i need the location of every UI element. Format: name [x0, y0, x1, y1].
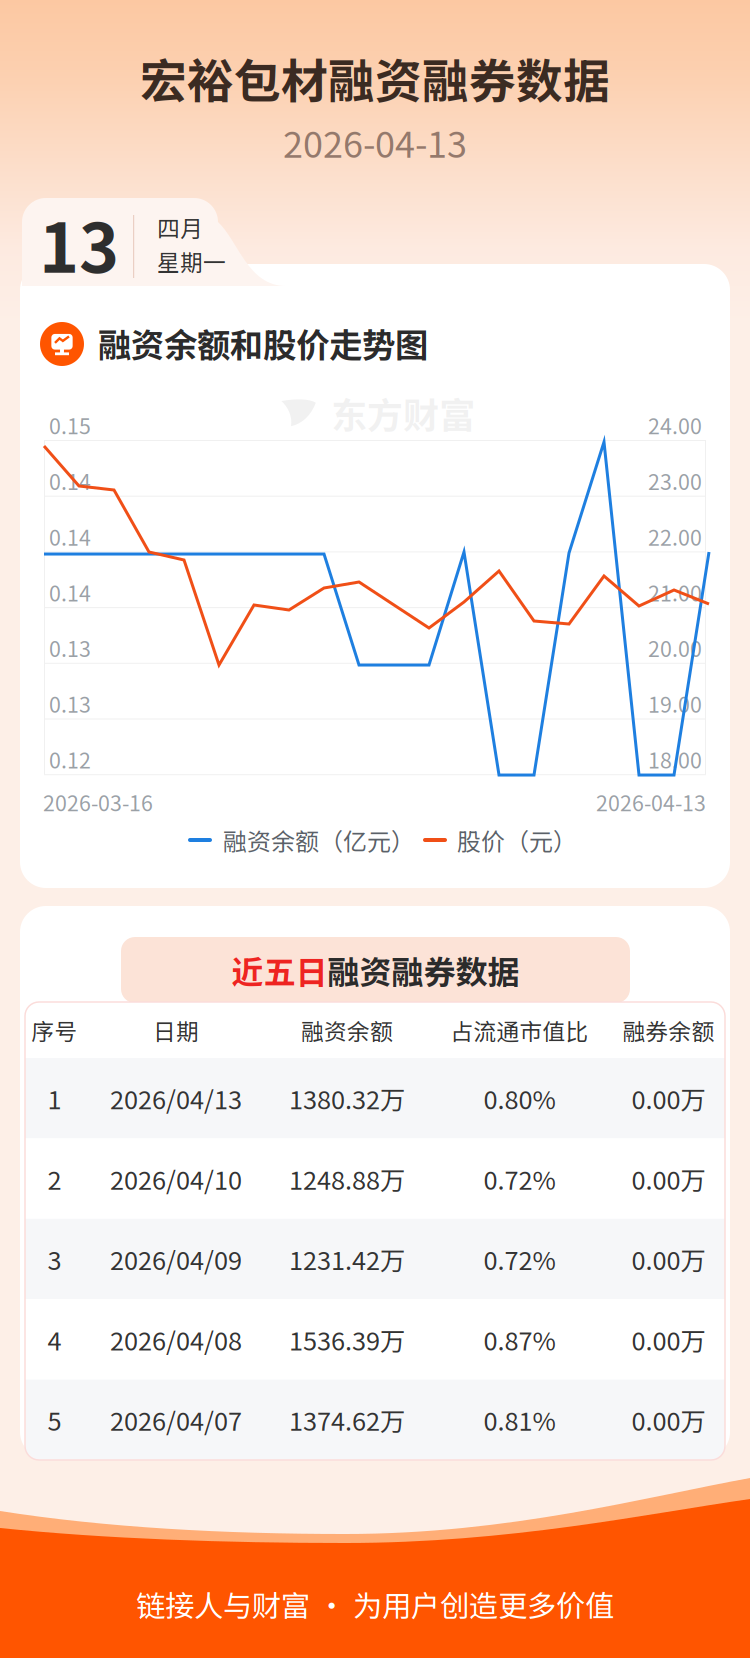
staticText: 0.72% [483, 1241, 555, 1277]
staticText: 0.00万 [631, 1080, 705, 1117]
staticText: 0.00万 [631, 1401, 705, 1438]
staticText: 1374.62万 [289, 1401, 405, 1438]
staticText: 2026/04/10 [110, 1160, 242, 1197]
staticText: 2026/04/09 [110, 1241, 242, 1277]
staticText: 2026/04/07 [110, 1401, 242, 1438]
staticText: 18.00 [648, 744, 702, 775]
staticText: 序号 [31, 1014, 77, 1046]
staticText: 0.72% [483, 1160, 555, 1197]
staticText: 0.81% [483, 1401, 555, 1438]
staticText: 1 [47, 1080, 61, 1117]
staticText: 20.00 [648, 632, 702, 663]
staticText: 21.00 [648, 577, 702, 608]
staticText: 融资余额 [301, 1014, 393, 1046]
staticText: 19.00 [648, 688, 702, 719]
staticText: 0.00万 [631, 1241, 705, 1277]
staticText: 0.14 [49, 465, 91, 496]
staticText: 1380.32万 [289, 1080, 405, 1117]
staticText: 2 [47, 1160, 61, 1197]
staticText: 24.00 [648, 410, 702, 440]
staticText: 0.00万 [631, 1160, 705, 1197]
staticText: 13 [39, 194, 119, 292]
staticText: 1231.42万 [289, 1241, 405, 1277]
staticText: 链接人与财富 · 为用户创造更多价值 [136, 1583, 614, 1625]
staticText: 日期 [153, 1014, 199, 1046]
staticText: 0.13 [49, 632, 91, 663]
staticText: 2026-04-13 [283, 116, 467, 168]
staticText: 0.14 [49, 577, 91, 608]
staticText: 融券余额 [622, 1014, 714, 1046]
staticText: 0.15 [49, 410, 91, 440]
staticText: 占流通市值比 [450, 1014, 588, 1046]
staticText: 0.87% [483, 1321, 555, 1358]
staticText: 股价（元） [457, 823, 577, 857]
staticText: 22.00 [648, 521, 702, 552]
staticText: 3 [47, 1241, 61, 1277]
staticText: 融资余额和股价走势图 [98, 319, 428, 367]
staticText: 0.00万 [631, 1321, 705, 1358]
staticText: 2026-03-16 [43, 787, 153, 817]
staticText: 四月 [157, 211, 203, 243]
staticText: 近五日 [231, 947, 327, 993]
staticText: 23.00 [648, 465, 702, 496]
staticText: 2026/04/08 [110, 1321, 242, 1358]
staticText: 0.12 [49, 744, 91, 775]
staticText: 2026-04-13 [596, 787, 706, 817]
staticText: 0.80% [483, 1080, 555, 1117]
staticText: 5 [47, 1401, 61, 1438]
staticText: 融资融券数据 [327, 947, 519, 993]
staticText: 宏裕包材融资融券数据 [140, 44, 610, 112]
staticText: 1248.88万 [289, 1160, 405, 1197]
staticText: 融资余额（亿元） [223, 823, 415, 857]
staticText: 2026/04/13 [110, 1080, 242, 1117]
staticText: 4 [47, 1321, 61, 1358]
staticText: 0.13 [49, 688, 91, 719]
staticText: 0.14 [49, 521, 91, 552]
staticText: 星期一 [157, 245, 226, 277]
staticText: 东方财富 [331, 387, 475, 439]
staticText: 1536.39万 [289, 1321, 405, 1358]
